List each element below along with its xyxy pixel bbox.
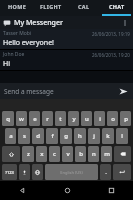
staticText: z xyxy=(27,150,30,158)
button[interactable]: Tasser Mobi xyxy=(0,29,133,49)
button[interactable]: shift xyxy=(2,146,20,162)
button[interactable]: CHAT xyxy=(100,0,133,16)
staticText: r xyxy=(46,115,49,123)
button[interactable]: t xyxy=(55,111,66,126)
staticText: My Messenger xyxy=(14,18,63,28)
button[interactable]: FLIGHT xyxy=(34,0,67,16)
staticText: m xyxy=(104,150,110,158)
button[interactable]: k xyxy=(102,128,114,144)
staticText: k xyxy=(106,132,110,140)
button[interactable]: j xyxy=(88,128,100,144)
staticText: a xyxy=(9,132,13,140)
button[interactable]: Send xyxy=(118,86,129,97)
button[interactable]: l xyxy=(116,128,128,144)
staticText: Hi xyxy=(3,59,10,69)
staticText: c xyxy=(53,150,56,158)
staticText: w xyxy=(19,115,24,123)
button[interactable]: v xyxy=(62,146,73,162)
button[interactable]: x xyxy=(36,146,47,162)
button[interactable]: More options xyxy=(120,18,130,28)
button[interactable]: e xyxy=(29,111,40,126)
button[interactable]: Recents xyxy=(89,181,133,200)
staticText: John Doe xyxy=(3,51,25,58)
button[interactable]: enter xyxy=(113,164,131,180)
staticText: j xyxy=(93,132,95,140)
staticText: Tasser Mobi xyxy=(3,30,32,37)
button[interactable]: mic xyxy=(19,164,30,180)
staticText: u xyxy=(85,115,89,123)
button[interactable]: a xyxy=(5,128,16,144)
staticText: h xyxy=(78,132,82,140)
staticText: t xyxy=(59,115,62,123)
staticText: CAL xyxy=(78,3,90,10)
staticText: l xyxy=(121,132,123,140)
staticText: y xyxy=(72,115,76,123)
staticText: n xyxy=(92,150,96,158)
button[interactable]: i xyxy=(94,111,105,126)
button[interactable]: w xyxy=(16,111,27,126)
staticText: i xyxy=(99,115,101,123)
staticText: e xyxy=(33,115,37,123)
staticText: o xyxy=(111,115,115,123)
staticText: CHAT xyxy=(109,3,125,10)
button[interactable]: h xyxy=(74,128,86,144)
button[interactable]: . xyxy=(100,164,111,180)
button[interactable]: m xyxy=(101,146,112,162)
staticText: d xyxy=(36,132,40,140)
button[interactable]: ?123 xyxy=(2,164,17,180)
staticText: g xyxy=(64,132,68,140)
staticText: q xyxy=(6,115,10,123)
button[interactable]: r xyxy=(42,111,53,126)
staticText: 26/06/2013, 19:19 xyxy=(92,31,130,37)
staticText: Send a message xyxy=(4,87,54,96)
staticText: ?123 xyxy=(5,170,14,175)
staticText: f xyxy=(51,132,54,140)
button[interactable]: English (US) xyxy=(45,164,98,180)
button[interactable]: d xyxy=(32,128,44,144)
staticText: 26/06/2013, 19:20 xyxy=(92,52,130,58)
button[interactable]: My Messenger xyxy=(0,16,133,29)
button[interactable]: p xyxy=(120,111,131,126)
button[interactable]: s xyxy=(18,128,30,144)
button[interactable]: u xyxy=(81,111,92,126)
button[interactable]: c xyxy=(49,146,60,162)
button[interactable]: HOME xyxy=(0,0,34,16)
button[interactable]: del xyxy=(114,146,131,162)
staticText: s xyxy=(23,132,26,140)
button[interactable]: q xyxy=(2,111,14,126)
staticText: v xyxy=(66,150,70,158)
button[interactable]: Back xyxy=(0,181,45,200)
staticText: FLIGHT xyxy=(40,3,62,10)
button[interactable]: Send a message xyxy=(4,87,115,96)
button[interactable]: g xyxy=(60,128,72,144)
staticText: . xyxy=(105,168,107,176)
button[interactable]: Home xyxy=(45,181,89,200)
button[interactable]: n xyxy=(88,146,99,162)
staticText: p xyxy=(124,115,128,123)
button[interactable]: f xyxy=(46,128,58,144)
button[interactable]: CAL xyxy=(67,0,100,16)
staticText: Hello everyone! xyxy=(3,38,54,48)
button[interactable]: John Doe xyxy=(0,50,133,70)
button[interactable]: o xyxy=(107,111,118,126)
staticText: HOME xyxy=(8,3,27,10)
staticText: b xyxy=(79,150,83,158)
button[interactable]: y xyxy=(68,111,79,126)
button[interactable]: b xyxy=(75,146,86,162)
staticText: English (US) xyxy=(60,170,83,175)
button[interactable]: z xyxy=(22,146,34,162)
staticText: x xyxy=(40,150,44,158)
button[interactable]: globe xyxy=(32,164,43,180)
